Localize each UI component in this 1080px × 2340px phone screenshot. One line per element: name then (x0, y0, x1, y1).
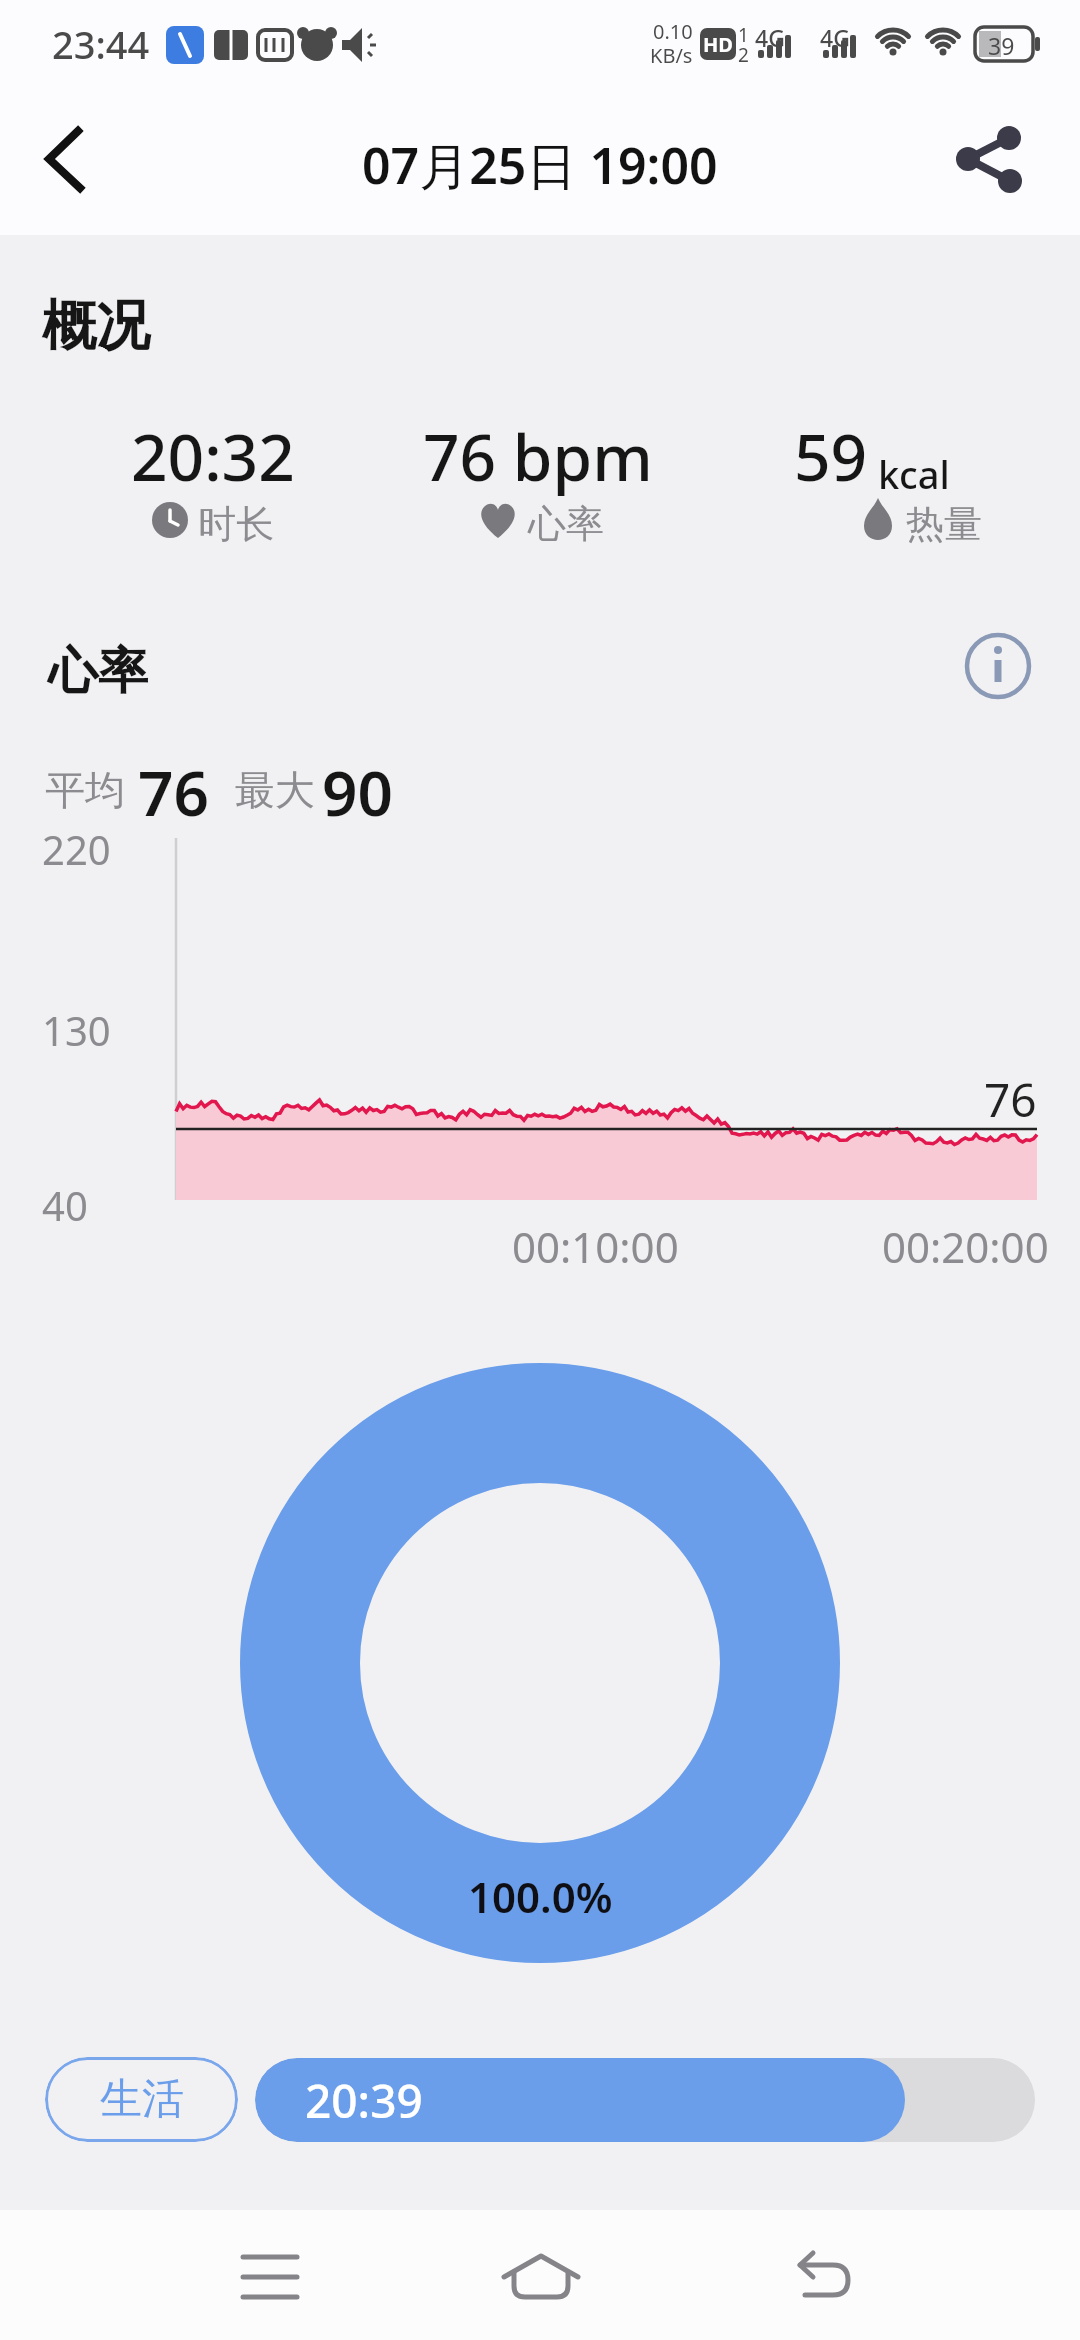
staticText: 平均 (45, 765, 125, 815)
staticText: 00:20:00 (882, 1218, 1049, 1275)
staticText: 0.10 (653, 18, 693, 45)
staticText: 热量 (906, 500, 982, 548)
staticText: 23:44 (52, 18, 150, 70)
staticText: 00:10:00 (512, 1218, 679, 1275)
staticText: 220 (42, 822, 111, 876)
staticText: 1 (738, 22, 749, 48)
staticText: 概况 (42, 292, 150, 360)
staticText: 时长 (198, 500, 274, 548)
staticText: 76 (138, 750, 209, 834)
staticText: 100.0% (468, 1868, 613, 1925)
staticText: HD (703, 31, 733, 58)
button[interactable] (945, 115, 1035, 205)
staticText: 76 bpm (423, 413, 653, 500)
staticText: 76 (984, 1068, 1037, 1131)
button[interactable] (962, 630, 1034, 702)
staticText: KB/s (650, 42, 693, 69)
staticText: 20:39 (305, 2069, 423, 2132)
staticText: 59 (794, 413, 868, 500)
staticText: 39 (988, 30, 1015, 61)
staticText: 40 (42, 1178, 88, 1232)
staticText: 4G (820, 22, 850, 53)
staticText: 心率 (48, 640, 148, 703)
staticText: 2 (738, 42, 749, 68)
button[interactable] (753, 2220, 893, 2330)
button[interactable] (36, 125, 96, 195)
staticText: 生活 (100, 2073, 184, 2126)
staticText: 90 (322, 750, 393, 834)
button[interactable]: 20:39 (255, 2058, 1035, 2142)
button[interactable]: 生活 (45, 2057, 238, 2142)
button[interactable] (471, 2220, 611, 2330)
staticText: 20:32 (131, 413, 295, 500)
staticText: kcal (868, 448, 950, 500)
staticText: 07月25日 19:00 (362, 131, 718, 199)
staticText: 130 (42, 1003, 111, 1057)
staticText: 最大 (235, 765, 315, 815)
staticText: 4G (755, 22, 785, 53)
staticText: 心率 (528, 500, 604, 548)
button[interactable] (200, 2220, 340, 2330)
